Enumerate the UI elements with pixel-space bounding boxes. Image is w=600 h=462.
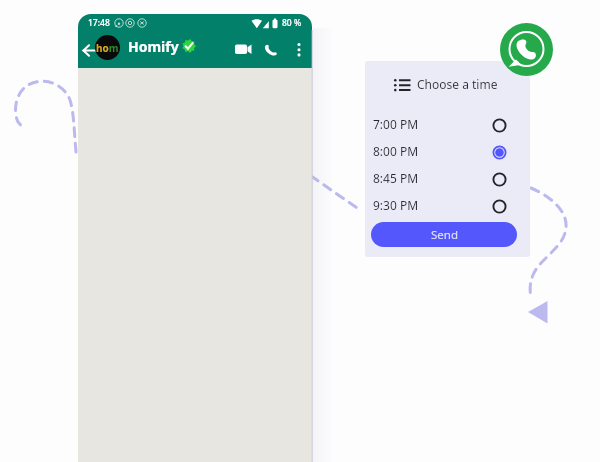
button[interactable]: 9:30 PM — [365, 195, 530, 222]
staticText: hom — [96, 41, 119, 55]
staticText: 80 % — [282, 17, 302, 29]
button[interactable]: More options — [289, 39, 309, 59]
button[interactable]: 7:00 PM — [365, 114, 530, 141]
staticText: 17:48 — [88, 17, 110, 29]
staticText: 8:00 PM — [373, 143, 419, 159]
button[interactable]: Voice call — [260, 39, 282, 61]
button[interactable]: Back — [78, 39, 100, 61]
button[interactable]: WhatsApp — [500, 23, 553, 76]
staticText: 9:30 PM — [373, 197, 419, 213]
button[interactable]: Send — [371, 222, 517, 247]
staticText: 8:45 PM — [373, 170, 419, 186]
button[interactable]: 8:45 PM — [365, 168, 530, 195]
staticText: Choose a time — [417, 76, 498, 92]
staticText: 7:00 PM — [373, 116, 419, 132]
staticText: Homify — [128, 37, 179, 56]
button[interactable]: 8:00 PM — [365, 141, 530, 168]
button[interactable]: Video call — [232, 38, 254, 60]
staticText: Send — [431, 227, 458, 243]
button[interactable]: Profile photo — [95, 35, 120, 60]
